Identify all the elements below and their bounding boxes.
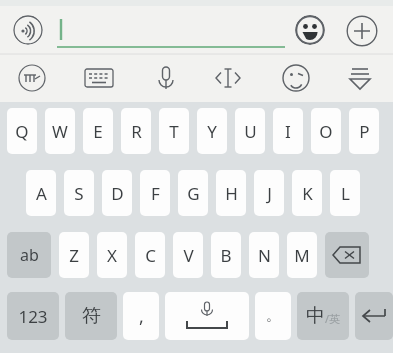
button[interactable]: G [178,170,208,216]
button[interactable]: B [211,232,241,278]
staticText: D [111,182,124,205]
button[interactable]: J [254,170,284,216]
button[interactable]: N [249,232,279,278]
button[interactable]: Input method [10,56,54,100]
button[interactable]: Backspace [325,232,369,278]
button[interactable]: Move cursor [206,56,250,100]
button[interactable]: A [26,170,56,216]
staticText: V [183,244,194,267]
button[interactable]: Q [7,108,37,154]
button[interactable]: Keyboard layout [77,56,121,100]
staticText: P [359,120,370,143]
button[interactable]: 123 [7,292,59,340]
staticText: Q [15,120,29,143]
button[interactable]: ab [7,232,51,278]
button[interactable]: 。 [255,292,291,340]
staticText: O [319,120,333,143]
button[interactable]: V [173,232,203,278]
button[interactable]: K [292,170,322,216]
button[interactable]: R [121,108,151,154]
button[interactable]: Hide keyboard [338,56,382,100]
staticText: ab [20,244,39,266]
staticText: U [244,120,257,143]
button[interactable]: Y [197,108,227,154]
staticText: E [93,120,103,143]
button[interactable]: 中 [297,292,349,340]
staticText: W [52,120,68,143]
button[interactable] [57,14,285,48]
button[interactable]: U [235,108,265,154]
staticText: X [107,244,117,267]
button[interactable]: O [311,108,341,154]
button[interactable]: L [330,170,360,216]
button[interactable]: Z [59,232,89,278]
staticText: 中 [306,304,325,328]
button[interactable]: Voice input [13,15,43,45]
button[interactable]: D [102,170,132,216]
staticText: R [131,120,142,143]
staticText: I [285,120,291,143]
staticText: S [74,182,84,205]
button[interactable]: I [273,108,303,154]
staticText: /英 [325,311,341,326]
staticText: Y [207,120,217,143]
staticText: 符 [82,304,101,328]
staticText: T [169,120,179,143]
staticText: C [145,244,156,267]
staticText: K [302,182,313,205]
staticText: N [258,244,271,267]
button[interactable]: F [140,170,170,216]
staticText: J [267,182,272,205]
button[interactable]: M [287,232,317,278]
staticText: , [139,304,144,329]
button[interactable]: H [216,170,246,216]
button[interactable]: X [97,232,127,278]
staticText: H [225,182,238,205]
button[interactable]: P [349,108,379,154]
staticText: Z [69,244,79,267]
button[interactable]: , [123,292,159,340]
button[interactable]: C [135,232,165,278]
staticText: 123 [18,305,48,328]
staticText: L [341,182,350,205]
button[interactable]: W [45,108,75,154]
button[interactable]: Enter [355,292,393,340]
staticText: A [36,182,47,205]
staticText: B [220,244,232,267]
staticText: 。 [266,307,280,325]
button[interactable]: E [83,108,113,154]
button[interactable]: Stickers [274,56,318,100]
staticText: F [151,182,160,205]
staticText: G [187,182,200,205]
button[interactable]: Emoji [295,15,325,45]
button[interactable]: More [346,15,378,47]
button[interactable]: Space [165,292,249,340]
button[interactable]: Voice [144,56,188,100]
button[interactable]: T [159,108,189,154]
button[interactable]: 符 [65,292,117,340]
staticText: M [294,244,310,267]
button[interactable]: S [64,170,94,216]
